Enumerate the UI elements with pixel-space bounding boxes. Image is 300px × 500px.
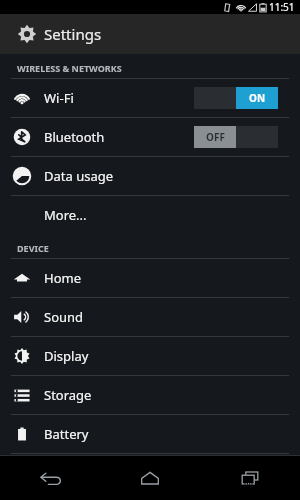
button[interactable]: Storage bbox=[0, 376, 300, 414]
staticText: Data usage bbox=[44, 167, 114, 185]
staticText: Home bbox=[44, 269, 81, 287]
button[interactable]: Home bbox=[0, 259, 300, 297]
staticText: Wi-Fi bbox=[44, 89, 74, 107]
staticText: Settings bbox=[44, 24, 102, 44]
button[interactable]: Battery bbox=[0, 415, 300, 453]
staticText: OFF bbox=[206, 130, 225, 144]
staticText: DEVICE bbox=[17, 242, 49, 254]
staticText: Bluetooth bbox=[44, 128, 105, 146]
button[interactable]: Bluetooth bbox=[0, 118, 300, 156]
button[interactable]: Recent apps bbox=[200, 455, 300, 500]
button[interactable]: Display bbox=[0, 337, 300, 375]
staticText: More... bbox=[44, 206, 87, 224]
staticText: 11:51 bbox=[269, 0, 295, 14]
button[interactable]: ON bbox=[194, 87, 278, 109]
staticText: Display bbox=[44, 347, 89, 365]
button[interactable]: Sound bbox=[0, 298, 300, 336]
staticText: Sound bbox=[44, 308, 84, 326]
button[interactable]: Wi-Fi bbox=[0, 79, 300, 117]
button[interactable]: Home bbox=[100, 455, 200, 500]
staticText: ON bbox=[249, 91, 266, 105]
staticText: Battery bbox=[44, 425, 89, 443]
staticText: WIRELESS & NETWORKS bbox=[17, 62, 122, 74]
button[interactable]: More... bbox=[0, 196, 300, 234]
staticText: Storage bbox=[44, 386, 92, 404]
button[interactable]: Back bbox=[0, 455, 100, 500]
button[interactable]: OFF bbox=[194, 126, 278, 148]
button[interactable]: Data usage bbox=[0, 157, 300, 195]
